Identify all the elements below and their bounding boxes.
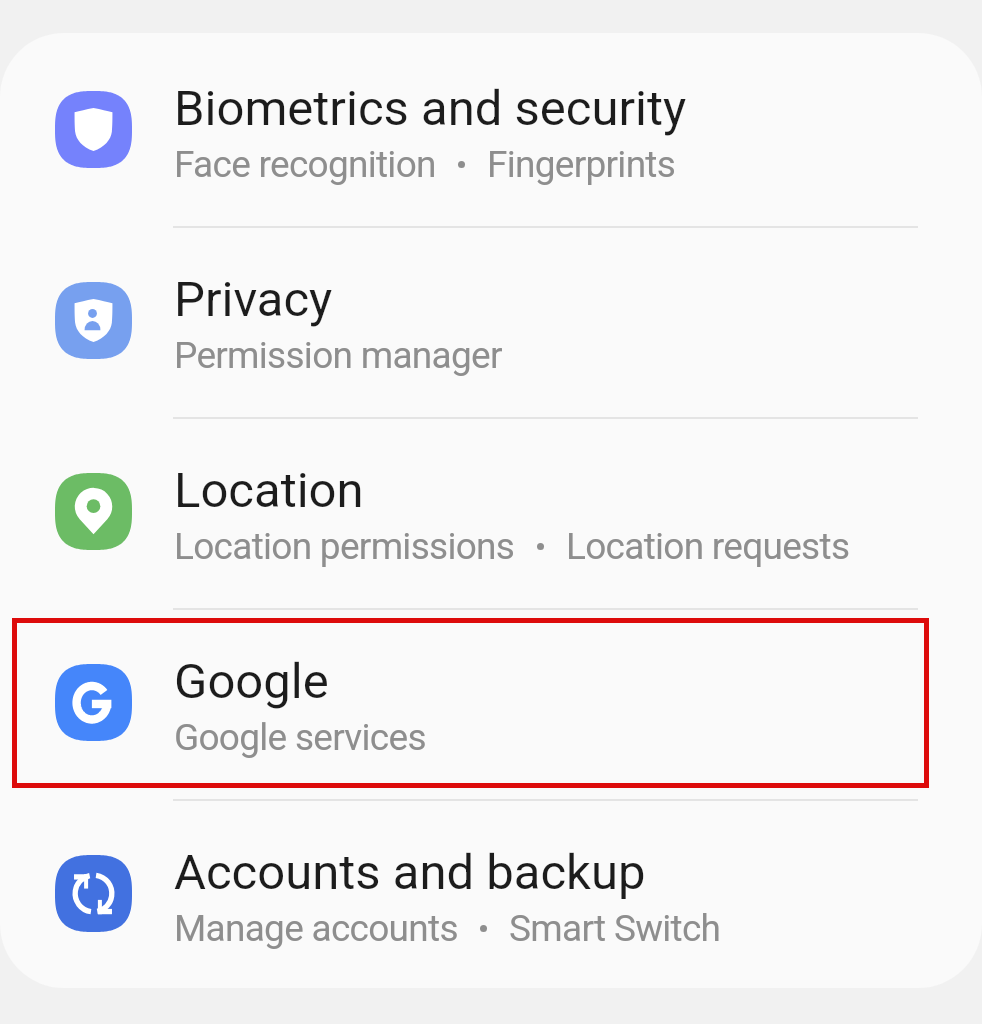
staticText: Location permissions xyxy=(174,525,515,568)
staticText: Privacy xyxy=(174,271,333,328)
staticText: Smart Switch xyxy=(509,907,721,950)
staticText: Location xyxy=(174,462,364,519)
staticText: Face recognition xyxy=(174,143,436,186)
button[interactable]: Privacy xyxy=(0,224,982,415)
button[interactable]: Accounts and backup xyxy=(0,797,982,988)
button[interactable]: Location xyxy=(0,415,982,606)
button[interactable]: Biometrics and security xyxy=(0,33,982,224)
staticText: Google services xyxy=(174,716,426,759)
staticText: Permission manager xyxy=(174,334,502,377)
staticText: Location requests xyxy=(566,525,850,568)
staticText: Fingerprints xyxy=(487,143,676,186)
staticText: Biometrics and security xyxy=(174,80,687,137)
staticText: Manage accounts xyxy=(174,907,458,950)
button[interactable]: Google xyxy=(0,606,982,797)
staticText: Google xyxy=(174,653,329,710)
staticText: Accounts and backup xyxy=(174,844,646,901)
